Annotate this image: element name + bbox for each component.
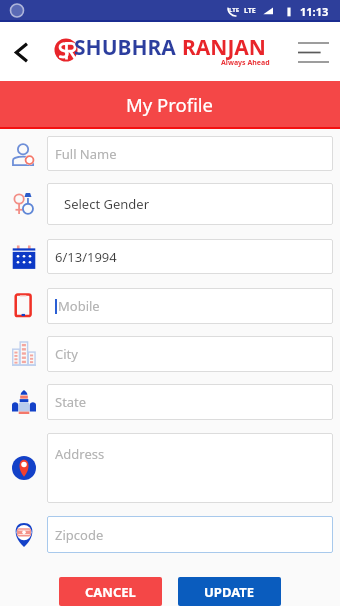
button[interactable]: Mobile	[47, 288, 333, 324]
staticText: RANJAN	[182, 33, 266, 62]
button[interactable]: Full Name	[47, 136, 333, 171]
staticText: 6/13/1994	[55, 248, 117, 266]
staticText: My Profile	[126, 92, 214, 117]
button[interactable]: City	[47, 336, 333, 372]
button[interactable]: State	[47, 384, 333, 420]
staticText: Full Name	[55, 145, 117, 163]
staticText: LTE	[244, 6, 256, 16]
staticText: Zipcode	[55, 526, 104, 544]
button[interactable]: Zipcode	[47, 516, 333, 553]
staticText: Mobile	[58, 297, 100, 315]
staticText: Address	[55, 445, 105, 463]
button[interactable]: CANCEL	[59, 577, 162, 606]
button[interactable]: 6/13/1994	[47, 239, 333, 274]
button[interactable]: UPDATE	[178, 577, 281, 606]
staticText: 11:13	[300, 4, 329, 19]
button[interactable]: Select Gender	[47, 183, 333, 225]
staticText: UPDATE	[204, 583, 255, 601]
staticText: CANCEL	[85, 583, 136, 601]
staticText: Select Gender	[64, 195, 149, 213]
staticText: Always Ahead	[221, 58, 270, 68]
staticText: SHUBHRA	[74, 33, 182, 62]
button[interactable]: Menu	[298, 34, 334, 70]
button[interactable]: Address	[47, 433, 333, 503]
staticText: State	[55, 393, 87, 411]
staticText: LTE	[229, 6, 240, 14]
button[interactable]: Back	[7, 38, 35, 66]
staticText: City	[55, 345, 78, 363]
